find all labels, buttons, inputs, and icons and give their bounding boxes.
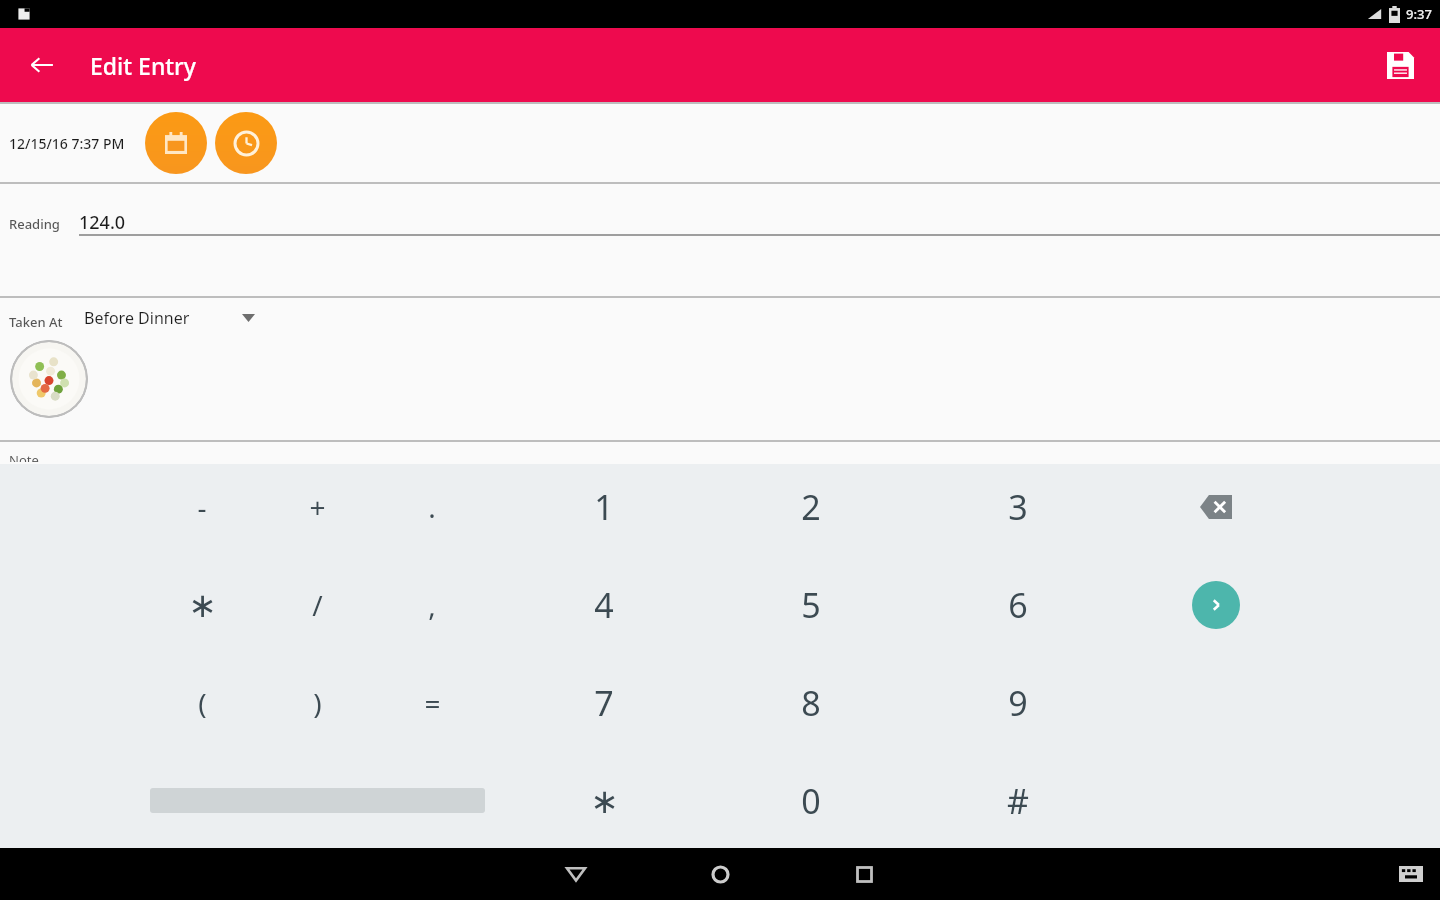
staticText: 6 bbox=[1008, 582, 1028, 628]
button[interactable]: ∗ bbox=[556, 753, 652, 849]
staticText: 8 bbox=[801, 680, 821, 726]
button[interactable]: ) bbox=[269, 655, 365, 751]
button[interactable]: 5 bbox=[763, 557, 859, 653]
button[interactable]: ∗ bbox=[154, 557, 250, 653]
staticText: / bbox=[312, 586, 323, 624]
staticText: 0 bbox=[801, 778, 821, 824]
button[interactable]: 3 bbox=[970, 459, 1066, 555]
staticText: = bbox=[424, 684, 441, 722]
staticText: - bbox=[197, 488, 207, 526]
staticText: Taken At bbox=[9, 313, 63, 331]
button[interactable]: 7 bbox=[556, 655, 652, 751]
button[interactable]: Meal photo bbox=[10, 340, 88, 418]
staticText: 2 bbox=[801, 484, 821, 530]
button[interactable]: Back bbox=[18, 41, 66, 89]
button[interactable]: 4 bbox=[556, 557, 652, 653]
staticText: ∗ bbox=[590, 781, 619, 821]
button[interactable]: 9 bbox=[970, 655, 1066, 751]
staticText: 5 bbox=[801, 582, 821, 628]
staticText: , bbox=[428, 586, 436, 624]
button[interactable]: - bbox=[154, 459, 250, 555]
button[interactable]: , bbox=[384, 557, 480, 653]
button[interactable]: Save bbox=[1376, 41, 1424, 89]
button[interactable]: Pick date bbox=[145, 112, 207, 174]
staticText: ∗ bbox=[188, 585, 217, 625]
button[interactable]: # bbox=[970, 753, 1066, 849]
staticText: 12/15/16 7:37 PM bbox=[9, 134, 125, 153]
button[interactable]: Keyboard bbox=[1394, 857, 1428, 891]
button[interactable]: 6 bbox=[970, 557, 1066, 653]
button[interactable]: ( bbox=[154, 655, 250, 751]
staticText: 3 bbox=[1008, 484, 1028, 530]
button[interactable]: 0 bbox=[763, 753, 859, 849]
staticText: . bbox=[428, 488, 436, 526]
button[interactable]: Home bbox=[694, 848, 746, 900]
staticText: Reading bbox=[9, 215, 60, 233]
staticText: Note bbox=[9, 451, 39, 462]
button[interactable]: Before Dinner bbox=[84, 302, 274, 334]
staticText: ) bbox=[313, 684, 322, 722]
staticText: Edit Entry bbox=[90, 50, 196, 81]
staticText: 1 bbox=[594, 484, 614, 530]
button[interactable]: Back bbox=[550, 848, 602, 900]
staticText: Before Dinner bbox=[84, 307, 190, 329]
staticText: 4 bbox=[594, 582, 614, 628]
button[interactable]: = bbox=[384, 655, 480, 751]
staticText: ( bbox=[198, 684, 207, 722]
button[interactable]: 2 bbox=[763, 459, 859, 555]
staticText: + bbox=[309, 488, 326, 526]
staticText: 7 bbox=[594, 680, 614, 726]
button[interactable]: Enter bbox=[1192, 581, 1240, 629]
button[interactable]: 1 bbox=[556, 459, 652, 555]
button[interactable]: + bbox=[269, 459, 365, 555]
staticText: # bbox=[1007, 778, 1029, 824]
staticText: 9:37 bbox=[1406, 5, 1432, 23]
button[interactable]: / bbox=[269, 557, 365, 653]
button[interactable]: Recents bbox=[838, 848, 890, 900]
button[interactable]: . bbox=[384, 459, 480, 555]
staticText: 9 bbox=[1008, 680, 1028, 726]
button[interactable]: Backspace bbox=[1167, 458, 1265, 556]
button[interactable]: Pick time bbox=[215, 112, 277, 174]
staticText: 124.0 bbox=[79, 210, 126, 235]
button[interactable]: 8 bbox=[763, 655, 859, 751]
